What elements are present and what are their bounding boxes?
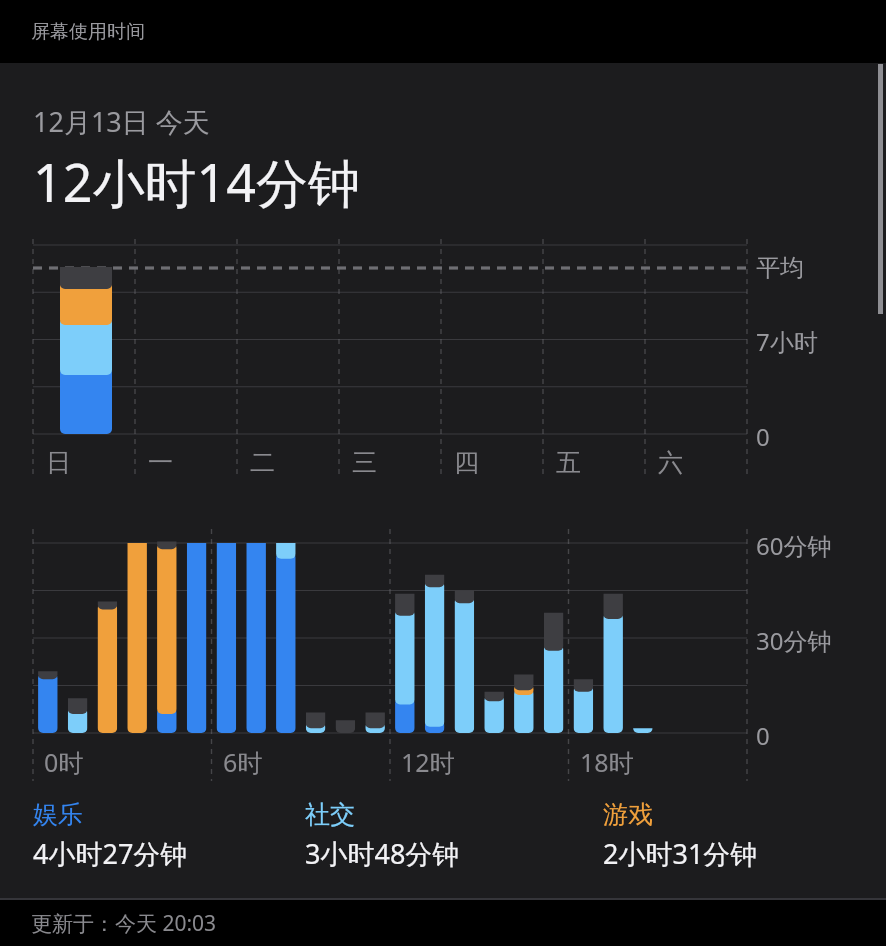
staticText: 游戏 — [603, 799, 653, 830]
staticText: 0 — [756, 719, 770, 752]
staticText: 三 — [352, 447, 377, 478]
staticText: 娱乐 — [33, 799, 83, 830]
staticText: 四 — [454, 447, 479, 478]
staticText: 12时 — [401, 745, 455, 779]
staticText: 6时 — [223, 745, 263, 779]
staticText: 3小时48分钟 — [305, 835, 460, 872]
staticText: 0时 — [44, 745, 84, 779]
staticText: 日 — [46, 447, 71, 478]
staticText: 屏幕使用时间 — [31, 20, 145, 44]
staticText: 一 — [148, 447, 173, 478]
staticText: 60分钟 — [756, 529, 832, 562]
staticText: 18时 — [580, 745, 634, 779]
staticText: 30分钟 — [756, 624, 832, 657]
staticText: 平均 — [756, 253, 804, 283]
button[interactable]: 游戏 — [591, 799, 886, 872]
button[interactable]: 娱乐 — [0, 799, 296, 872]
staticText: 社交 — [305, 799, 355, 830]
staticText: 7小时 — [756, 325, 818, 358]
button[interactable]: Weekly screen time chart — [0, 237, 886, 485]
staticText: 更新于：今天 20:03 — [31, 909, 217, 938]
staticText: 12月13日 今天 — [33, 103, 210, 140]
staticText: 12小时14分钟 — [33, 146, 360, 217]
button[interactable]: 社交 — [296, 799, 591, 872]
staticText: 0 — [756, 420, 770, 453]
staticText: 五 — [556, 447, 581, 478]
button[interactable]: Hourly screen time chart — [0, 523, 886, 785]
staticText: 4小时27分钟 — [33, 835, 188, 872]
staticText: 二 — [250, 447, 275, 478]
staticText: 六 — [658, 447, 683, 478]
staticText: 2小时31分钟 — [603, 835, 758, 872]
